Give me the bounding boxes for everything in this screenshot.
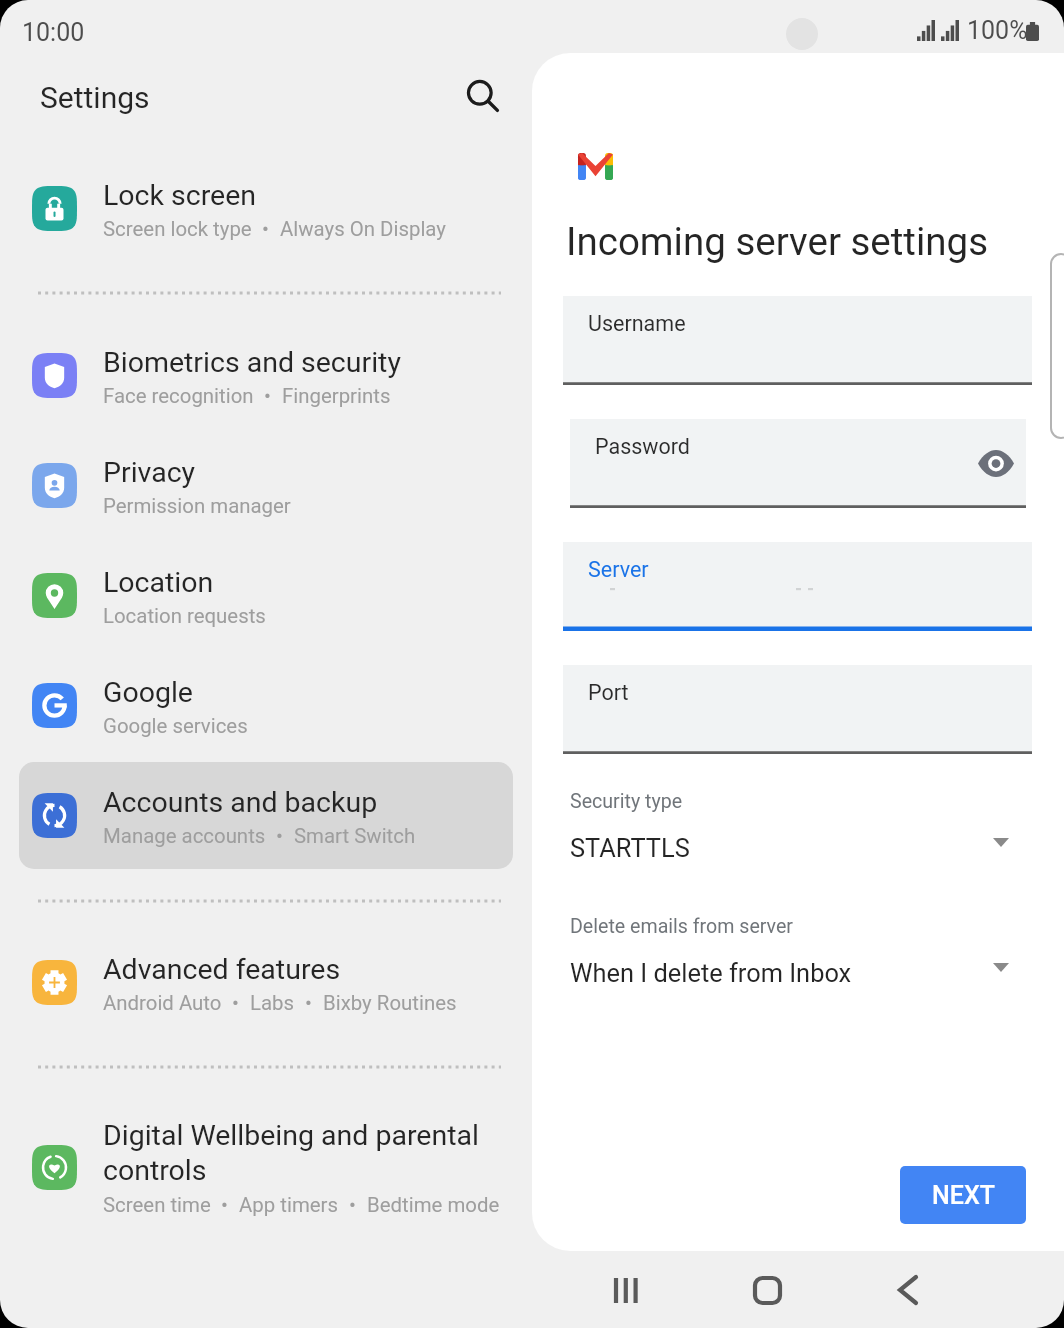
staticText: Labs xyxy=(250,991,295,1015)
staticText: • xyxy=(295,991,323,1015)
button[interactable] xyxy=(0,762,520,869)
button[interactable]: Show password xyxy=(973,440,1019,486)
staticText: 100% xyxy=(967,16,1028,45)
staticText: • xyxy=(252,217,280,241)
staticText: Fingerprints xyxy=(282,384,391,408)
button[interactable]: Back xyxy=(881,1263,935,1317)
button[interactable]: Password xyxy=(570,419,1026,508)
button[interactable]: Server xyxy=(563,542,1032,631)
button[interactable] xyxy=(0,160,520,256)
staticText: Always On Display xyxy=(280,217,446,241)
staticText: Smart Switch xyxy=(294,824,416,848)
staticText: Manage accounts xyxy=(103,824,266,848)
button[interactable] xyxy=(0,1100,520,1230)
staticText: Bixby Routines xyxy=(323,991,457,1015)
staticText: Password xyxy=(595,434,690,459)
staticText: Biometrics and security xyxy=(103,346,401,379)
staticText: Digital Wellbeing and parental xyxy=(103,1119,479,1152)
staticText: • xyxy=(211,1193,239,1217)
staticText: Google xyxy=(103,676,193,709)
staticText: Lock screen xyxy=(103,179,257,212)
staticText: • xyxy=(254,384,282,408)
button[interactable]: Recents xyxy=(599,1263,653,1317)
staticText: Accounts and backup xyxy=(103,786,378,819)
staticText: Privacy xyxy=(103,456,196,489)
staticText: Username xyxy=(588,311,686,336)
staticText: When I delete from Inbox xyxy=(570,958,852,988)
button[interactable] xyxy=(0,547,520,643)
staticText: 10:00 xyxy=(22,18,85,47)
staticText: Port xyxy=(588,680,629,705)
staticText: Bedtime mode xyxy=(367,1193,500,1217)
staticText: controls xyxy=(103,1154,207,1187)
button[interactable]: Username xyxy=(563,296,1032,385)
button[interactable]: Port xyxy=(563,665,1032,754)
staticText: Server xyxy=(588,557,649,582)
staticText: Settings xyxy=(40,80,150,115)
staticText: NEXT xyxy=(932,1181,995,1210)
staticText: Screen lock type xyxy=(103,217,252,241)
button[interactable] xyxy=(0,327,520,423)
staticText: • xyxy=(339,1193,367,1217)
button[interactable] xyxy=(0,934,520,1030)
staticText: Google services xyxy=(103,714,248,738)
staticText: STARTTLS xyxy=(570,833,690,863)
staticText: Android Auto xyxy=(103,991,222,1015)
button[interactable]: NEXT xyxy=(900,1166,1026,1224)
staticText: • xyxy=(222,991,250,1015)
button[interactable]: Home xyxy=(740,1263,794,1317)
staticText: App timers xyxy=(239,1193,339,1217)
staticText: Incoming server settings xyxy=(566,219,989,264)
button[interactable]: Delete emails from server xyxy=(569,915,1034,1015)
staticText: Advanced features xyxy=(103,953,341,986)
button[interactable]: Search xyxy=(455,68,511,124)
staticText: Delete emails from server xyxy=(570,915,793,938)
staticText: • xyxy=(266,824,294,848)
button[interactable]: Security type xyxy=(569,790,1034,890)
button[interactable] xyxy=(0,657,520,753)
button[interactable] xyxy=(0,437,520,533)
staticText: Location requests xyxy=(103,604,266,628)
staticText: Face recognition xyxy=(103,384,254,408)
staticText: Permission manager xyxy=(103,494,291,518)
staticText: Screen time xyxy=(103,1193,211,1217)
staticText: Security type xyxy=(570,790,683,813)
staticText: Location xyxy=(103,566,214,599)
